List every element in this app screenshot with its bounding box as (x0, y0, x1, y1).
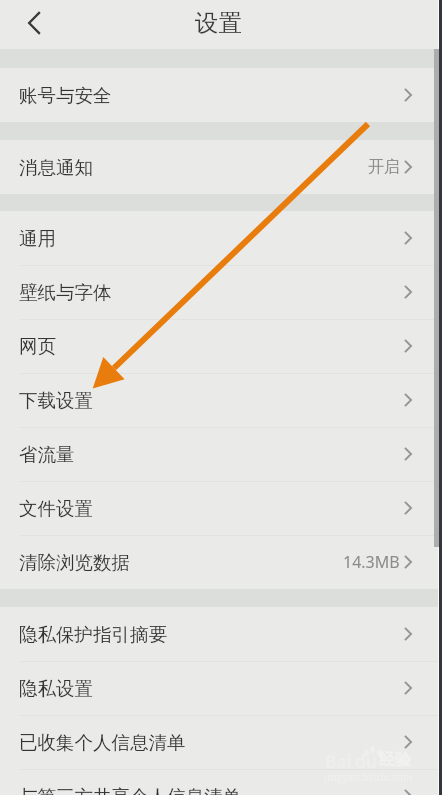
staticText: 经验 (379, 750, 411, 770)
staticText: 已收集个人信息清单 (19, 731, 186, 754)
staticText: 清除浏览数据 (19, 551, 130, 574)
staticText: 省流量 (19, 443, 75, 466)
staticText: 与第三方共享个人信息清单 (19, 785, 241, 795)
button[interactable]: 壁纸与字体 (0, 265, 442, 319)
staticText: 设置 (195, 8, 242, 38)
staticText: 开启 (368, 157, 400, 177)
button[interactable]: 通用 (0, 211, 442, 265)
staticText: 下载设置 (19, 389, 93, 412)
button[interactable]: 隐私设置 (0, 661, 442, 715)
staticText: 隐私设置 (19, 677, 93, 700)
staticText: 文件设置 (19, 497, 93, 520)
button[interactable]: 已收集个人信息清单 (0, 715, 442, 769)
staticText: 通用 (19, 227, 56, 250)
staticText: 14.3MB (343, 551, 400, 573)
staticText: 隐私保护指引摘要 (19, 623, 167, 646)
button[interactable]: 消息通知 (0, 140, 442, 194)
staticText: 网页 (19, 335, 56, 358)
button[interactable]: 清除浏览数据 (0, 535, 442, 589)
button[interactable]: 与第三方共享个人信息清单 (0, 769, 442, 795)
button[interactable]: Back (14, 3, 54, 43)
staticText: 消息通知 (19, 156, 93, 179)
button[interactable]: 下载设置 (0, 373, 442, 427)
button[interactable]: 文件设置 (0, 481, 442, 535)
staticText: 壁纸与字体 (19, 281, 112, 304)
button[interactable]: 账号与安全 (0, 68, 442, 122)
staticText: 账号与安全 (19, 84, 112, 107)
button[interactable]: 省流量 (0, 427, 442, 481)
button[interactable]: 隐私保护指引摘要 (0, 607, 442, 661)
button[interactable]: 网页 (0, 319, 442, 373)
